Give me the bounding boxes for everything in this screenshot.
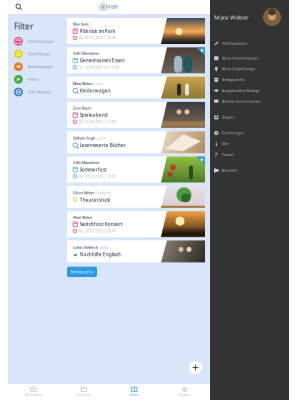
staticText: Lukas Dürrbeck (73, 245, 98, 250)
staticText: Nachhilfe Englisch (80, 251, 121, 258)
button[interactable]: Veranstaltungen (8, 35, 67, 48)
button[interactable]: Über (210, 138, 289, 149)
staticText: ? (215, 151, 218, 158)
staticText: Max Kunz (73, 22, 89, 26)
staticText: Mi, 01.04.2020 | 19:00 (79, 120, 116, 124)
staticText: sucht (93, 81, 102, 86)
staticText: Mara Weber (73, 81, 92, 86)
staticText: Gotham Singh (73, 136, 95, 140)
button[interactable]: Abmelden (210, 165, 289, 176)
button[interactable]: Nachrichten (8, 384, 58, 400)
button[interactable]: Profil bearbeiten (210, 38, 289, 49)
button[interactable]: HdH-Wandern (8, 86, 67, 98)
staticText: Theaterstück (80, 197, 111, 203)
staticText: Nachrichten (25, 393, 42, 397)
staticText: Abmelden (222, 168, 238, 173)
button[interactable]: Beitragsarchiv (210, 74, 289, 85)
button[interactable]: Ankündigungen (8, 60, 67, 73)
button[interactable]: Oliver Weber (67, 186, 205, 208)
staticText: Mara Weber (73, 215, 92, 220)
staticText: Kinderwagen (80, 88, 111, 94)
button[interactable]: Home (109, 384, 159, 400)
staticText: HdH-Mannheim (73, 160, 99, 165)
staticText: bietet (99, 245, 108, 250)
staticText: Sommerfest (80, 167, 107, 173)
button[interactable]: Suche (8, 0, 30, 14)
staticText: Zeno Bayer (73, 106, 91, 110)
staticText: Ankündigungen (28, 64, 53, 69)
button[interactable]: Videos (8, 73, 67, 86)
staticText: Picknick im Park (80, 28, 116, 34)
button[interactable]: Gruppen (210, 112, 289, 123)
staticText: HdH-Mannheim (73, 51, 99, 56)
button[interactable]: Mara Weber (67, 77, 205, 99)
button[interactable]: Einstellungen (210, 128, 289, 138)
staticText: Meine Empfehlungen (222, 67, 256, 71)
button[interactable]: Empfehlungen (8, 48, 67, 60)
button[interactable]: Lukas Dürrbeck (67, 240, 205, 262)
button[interactable]: Mara Weber (67, 211, 205, 237)
staticText: HdH (107, 4, 118, 10)
staticText: Oliver Weber (73, 191, 94, 195)
staticText: Spieleabend (80, 112, 108, 118)
staticText: Beitragsarchiv (222, 77, 245, 82)
staticText: Ausgeblendete Beiträge (222, 88, 260, 93)
button[interactable]: Gotham Singh (67, 131, 205, 153)
staticText: Empfehlungen (28, 51, 51, 56)
button[interactable]: Zeno Bayer (67, 102, 205, 128)
staticText: Videos (28, 77, 39, 82)
staticText: Sa, 18.04.2020 um 19:00 (79, 65, 119, 69)
staticText: Kalender (77, 393, 91, 397)
staticText: Gemeinsames Essen (80, 57, 125, 64)
staticText: Veranstaltungen (28, 39, 54, 44)
staticText: sucht (96, 136, 105, 140)
button[interactable]: Kalender (58, 384, 109, 400)
staticText: HdH-Wandern (28, 90, 51, 94)
button[interactable]: HdH-Mannheim (67, 156, 205, 182)
staticText: Home (130, 393, 139, 397)
button[interactable]: Aktuelle Konversationen (210, 96, 289, 107)
staticText: Beitragsarchiv (70, 269, 93, 274)
staticText: Einstellungen (222, 131, 244, 135)
staticText: Aktuelle Konversationen (222, 99, 261, 104)
button[interactable]: Neuer Beitrag (189, 361, 202, 374)
staticText: Lesenswerte Bücher (80, 142, 126, 148)
staticText: Tutorial (222, 152, 234, 157)
staticText: Gruppen (222, 115, 235, 119)
button[interactable]: Meine Empfehlungen (210, 64, 289, 74)
button[interactable]: HdH-Mannheim (67, 47, 205, 73)
button[interactable]: Max Kunz (67, 18, 205, 44)
staticText: Über (222, 141, 229, 146)
staticText: empfiehlt (95, 191, 110, 195)
staticText: Sa, 28.03.2020 | 20:00 (79, 229, 116, 233)
staticText: Gruppen (178, 393, 191, 397)
button[interactable]: Beitragsarchiv (67, 267, 97, 277)
staticText: Do, 09.02.2020 | 18:00 (79, 174, 116, 179)
staticText: Do, 06.02.2020 | 18:00 (79, 36, 116, 40)
staticText: Filter (14, 21, 33, 32)
button[interactable]: ? (210, 149, 289, 160)
button[interactable]: Gruppen (159, 384, 210, 400)
button[interactable]: Meine Veranstaltungen (210, 53, 289, 64)
staticText: Meine Veranstaltungen (222, 56, 259, 60)
staticText: Switchfoot Konzert (80, 221, 123, 227)
button[interactable]: Ausgeblendete Beiträge (210, 85, 289, 96)
staticText: Profil bearbeiten (222, 41, 248, 46)
staticText: Mara Weber (214, 13, 249, 21)
